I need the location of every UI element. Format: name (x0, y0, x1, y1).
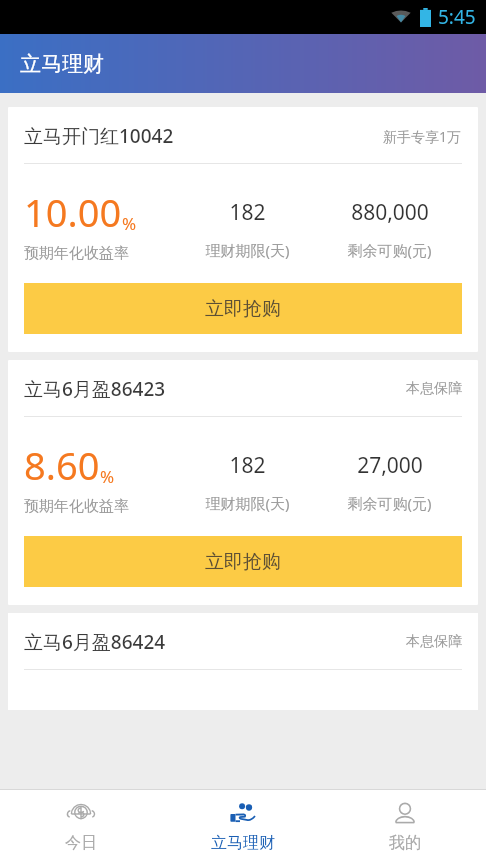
button[interactable]: 立马开门红10042 (8, 107, 478, 352)
button[interactable]: 立马理财 (162, 790, 324, 864)
staticText: 立马理财 (20, 51, 104, 77)
staticText: 5:45 (438, 4, 476, 30)
staticText: 立马开门红10042 (24, 123, 174, 149)
staticText: 我的 (389, 833, 421, 853)
staticText: 预期年化收益率 (24, 244, 129, 263)
staticText: 立马理财 (211, 833, 275, 853)
staticText: 理财期限(天) (205, 240, 290, 260)
button[interactable]: 立即抢购 (24, 536, 462, 587)
staticText: 剩余可购(元) (347, 240, 432, 260)
staticText: 立马6月盈86423 (24, 376, 166, 402)
staticText: 立即抢购 (205, 550, 281, 574)
staticText: 27,000 (357, 451, 423, 480)
staticText: 立马6月盈86424 (24, 629, 166, 655)
button[interactable]: 立马6月盈86423 (8, 360, 478, 605)
staticText: 本息保障 (406, 633, 462, 651)
staticText: 剩余可购(元) (347, 493, 432, 513)
staticText: 10.00 (24, 186, 122, 238)
staticText: 新手专享1万 (383, 127, 462, 146)
staticText: 182 (229, 198, 266, 227)
button[interactable]: 今日 (0, 790, 162, 864)
staticText: % (100, 465, 115, 488)
staticText: 182 (229, 451, 266, 480)
staticText: 今日 (65, 833, 97, 853)
button[interactable]: 立马6月盈86424 (8, 613, 478, 710)
staticText: 880,000 (351, 198, 429, 227)
staticText: 立即抢购 (205, 297, 281, 321)
staticText: 8.60 (24, 439, 100, 491)
button[interactable]: 我的 (324, 790, 486, 864)
staticText: 理财期限(天) (205, 493, 290, 513)
staticText: 本息保障 (406, 380, 462, 398)
staticText: 预期年化收益率 (24, 497, 129, 516)
button[interactable]: 立即抢购 (24, 283, 462, 334)
staticText: % (122, 212, 137, 235)
